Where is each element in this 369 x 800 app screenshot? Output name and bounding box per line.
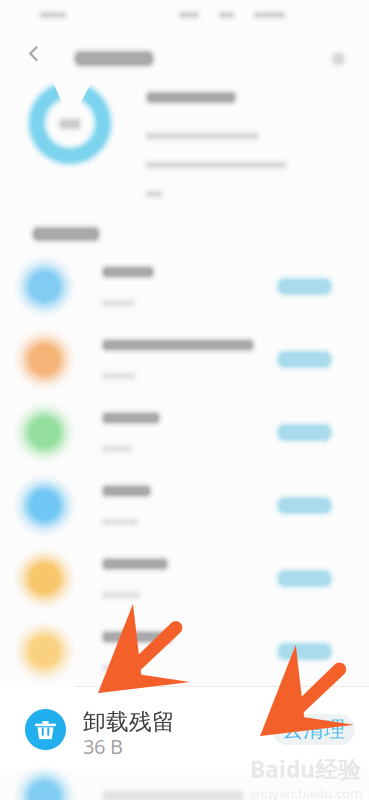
button[interactable]: More options <box>315 36 362 82</box>
button[interactable] <box>0 469 369 542</box>
staticText: 36 B <box>83 733 123 760</box>
button[interactable]: 卸载残留 <box>0 686 369 770</box>
button[interactable] <box>0 323 369 396</box>
button[interactable] <box>0 396 369 469</box>
button[interactable] <box>0 615 369 688</box>
staticText: jingyan.baidu.com <box>250 784 362 800</box>
button[interactable] <box>0 250 369 323</box>
staticText: Baidu经验 <box>250 754 361 784</box>
staticText: 去清理 <box>282 716 345 743</box>
button[interactable] <box>0 542 369 615</box>
staticText: 卸载残留 <box>83 708 175 736</box>
button[interactable]: Back <box>16 34 52 74</box>
